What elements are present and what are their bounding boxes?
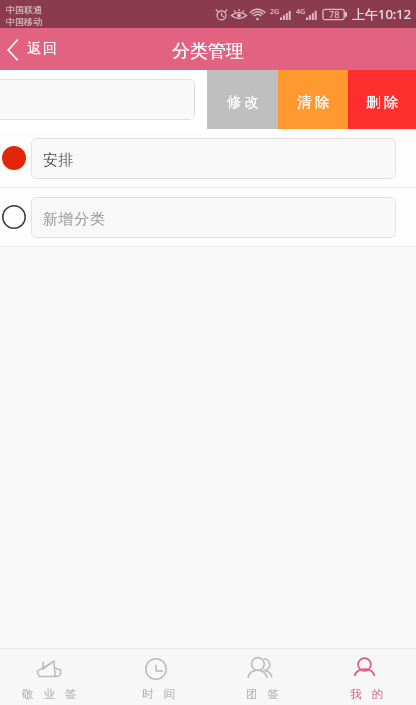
staticText: 中国联通 (6, 4, 42, 15)
staticText: 分类管理 (172, 40, 244, 63)
button[interactable]: 返回 (0, 28, 68, 70)
staticText: 敬业签 (22, 687, 87, 701)
button[interactable]: 团签 (208, 649, 312, 705)
button[interactable] (0, 79, 195, 120)
staticText: 安排 (43, 151, 75, 170)
button[interactable]: 我的 (312, 649, 416, 705)
staticText: 新增分类 (43, 210, 106, 229)
staticText: 删除 (366, 93, 402, 111)
button[interactable]: 清除 (278, 70, 348, 129)
staticText: 我的 (345, 687, 388, 701)
button[interactable]: 新增分类 (0, 188, 416, 246)
staticText: 上午10:12 (352, 5, 412, 23)
staticText: 清除 (297, 93, 333, 111)
staticText: 2G (270, 7, 280, 17)
button[interactable]: 修改 (207, 70, 278, 129)
button[interactable]: 安排 (0, 129, 416, 187)
staticText: 时间 (137, 687, 180, 701)
staticText: 78 (329, 8, 340, 20)
button[interactable]: 删除 (348, 70, 416, 129)
staticText: 返回 (26, 40, 58, 58)
staticText: 中国移动 (6, 16, 42, 27)
staticText: 团签 (241, 687, 284, 701)
staticText: 4G (296, 7, 306, 17)
button[interactable]: 时间 (104, 649, 208, 705)
staticText: 修改 (227, 93, 263, 111)
button[interactable]: 敬业签 (0, 649, 104, 705)
